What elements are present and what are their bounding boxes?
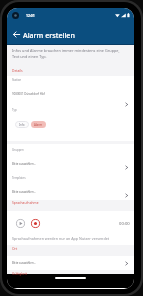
button[interactable]: Play recording	[16, 219, 25, 228]
button[interactable]	[7, 172, 134, 200]
staticText: Gültigkeit	[12, 271, 28, 275]
staticText: Details	[12, 68, 23, 72]
button[interactable]: Start recording	[31, 219, 40, 228]
button[interactable]: Alarm	[31, 121, 46, 128]
staticText: 12:01	[26, 13, 35, 18]
button[interactable]: Back	[11, 29, 22, 40]
staticText: Ort	[12, 246, 18, 250]
staticText: Bitte auswählen...	[12, 190, 37, 194]
staticText: Typ	[12, 108, 17, 112]
staticText: Infos und Alarme brauchen immer mindeste…	[12, 48, 120, 59]
staticText: 9030001 Düsseldorf Hbf	[12, 92, 45, 96]
button[interactable]	[7, 76, 134, 107]
staticText: Sprachaufnahmen werden nur an App Nutzer…	[12, 236, 110, 241]
staticText: Alarm erstellen	[23, 30, 75, 40]
staticText: Templates	[12, 176, 26, 180]
button[interactable]	[7, 144, 134, 172]
button[interactable]	[7, 256, 134, 270]
staticText: Bitte auswählen...	[12, 261, 37, 265]
staticText: Sprachaufnahme	[12, 200, 39, 204]
staticText: Station	[12, 78, 22, 82]
staticText: Alarm	[34, 123, 43, 127]
staticText: 00:00	[119, 221, 130, 227]
staticText: Info	[19, 123, 25, 127]
button[interactable]: Info	[15, 121, 29, 128]
staticText: Bitte auswählen...	[12, 162, 37, 166]
staticText: Gruppen	[12, 148, 24, 152]
